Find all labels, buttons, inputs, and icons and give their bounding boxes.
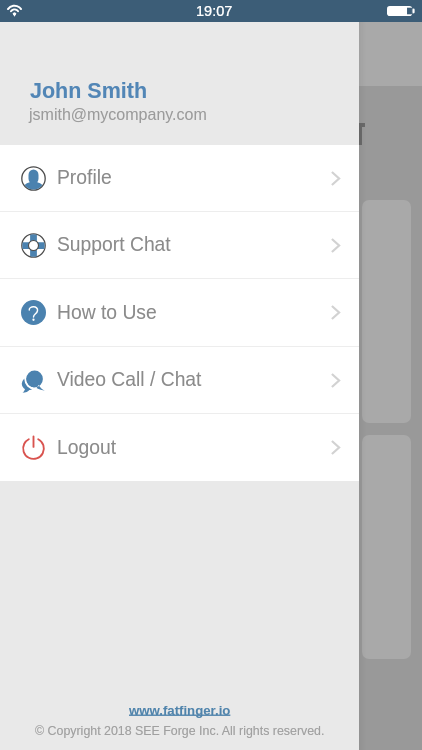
staticText: jsmith@mycompany.com: [29, 106, 207, 124]
button[interactable]: Profile: [0, 145, 359, 211]
staticText: Logout: [57, 437, 117, 459]
button[interactable]: Close navigation drawer: [359, 0, 422, 750]
button[interactable]: Support Chat: [0, 212, 359, 278]
button[interactable]: Video Call / Chat: [0, 347, 359, 413]
staticText: John Smith: [30, 79, 148, 103]
button[interactable]: Logout: [0, 414, 359, 481]
other: Wi-Fi signal: [7, 4, 22, 18]
other: Battery: [387, 6, 415, 16]
staticText: © Copyright 2018 SEE Forge Inc. All righ…: [35, 724, 325, 738]
staticText: Video Call / Chat: [57, 369, 202, 391]
staticText: 19:07: [196, 3, 233, 19]
button[interactable]: www.fatfinger.io: [129, 703, 231, 718]
staticText: How to Use: [57, 302, 157, 324]
staticText: Support Chat: [57, 234, 171, 256]
button[interactable]: How to Use: [0, 279, 359, 346]
staticText: Profile: [57, 167, 112, 189]
